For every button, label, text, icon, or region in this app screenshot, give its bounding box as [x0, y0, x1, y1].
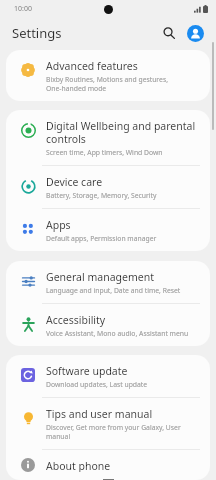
staticText: Tips and user manual — [46, 407, 153, 421]
button[interactable]: Digital Wellbeing and parental controls — [6, 110, 210, 166]
staticText: Accessibility — [46, 313, 106, 327]
button[interactable]: Account — [182, 20, 208, 46]
staticText: About phone — [46, 459, 111, 472]
staticText: Software update — [46, 364, 128, 378]
staticText: Device care — [46, 175, 103, 189]
staticText: Voice Assistant, Mono audio, Assistant m… — [46, 329, 189, 338]
staticText: Battery, Storage, Memory, Security — [46, 191, 157, 200]
button[interactable]: Advanced features — [6, 50, 210, 101]
staticText: Advanced features — [46, 59, 138, 73]
staticText: Language and input, Date and time, Reset — [46, 286, 181, 295]
staticText: Screen time, App timers, Wind Down — [46, 148, 163, 157]
staticText: Bixby Routines, Motions and gestures, On… — [46, 75, 168, 93]
button[interactable]: Device care — [6, 166, 210, 209]
staticText: Default apps, Permission manager — [46, 234, 157, 243]
staticText: 10:00 — [14, 4, 32, 14]
staticText: Download updates, Last update — [46, 380, 148, 389]
button[interactable]: General management — [6, 261, 210, 304]
button[interactable]: Tips and user manual — [6, 398, 210, 450]
staticText: Apps — [46, 218, 71, 232]
staticText: Discover, Get more from your Galaxy, Use… — [46, 423, 181, 441]
button[interactable]: Search — [156, 20, 182, 46]
staticText: Settings — [12, 24, 156, 42]
staticText: Digital Wellbeing and parental controls — [46, 119, 196, 146]
staticText: General management — [46, 270, 154, 284]
button[interactable]: Apps — [6, 209, 210, 251]
button[interactable]: About phone — [6, 450, 210, 480]
button[interactable]: Software update — [6, 355, 210, 398]
button[interactable]: Accessibility — [6, 304, 210, 346]
